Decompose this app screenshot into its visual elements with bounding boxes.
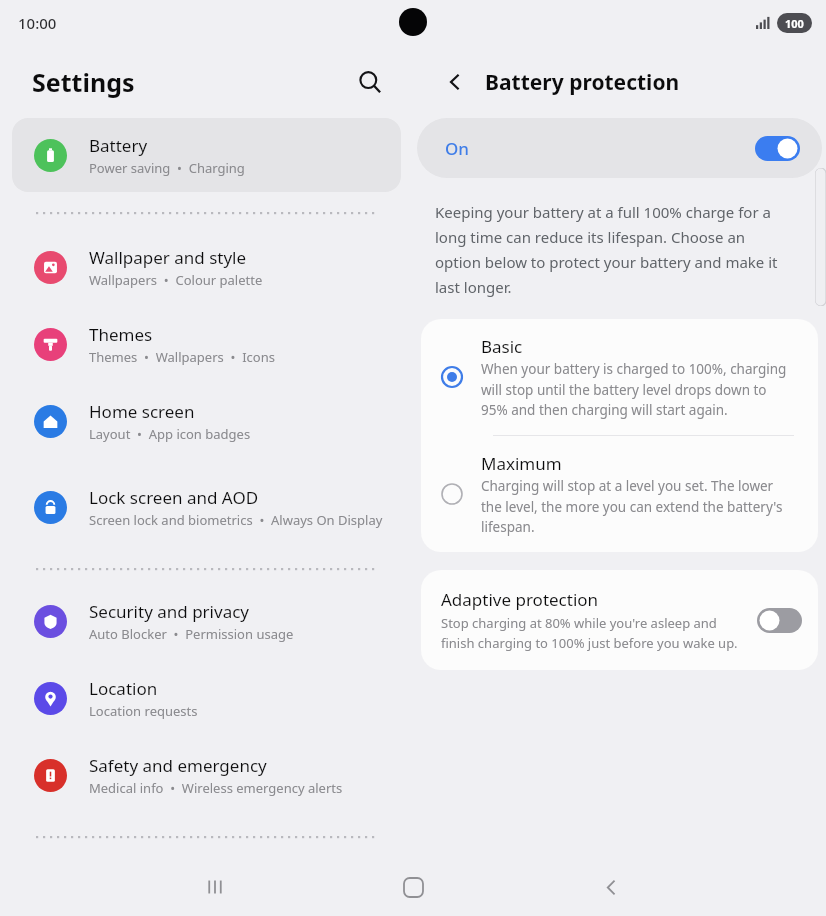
button[interactable]: Adaptive protection: [421, 570, 818, 670]
staticText: Keeping your battery at a full 100% char…: [435, 202, 786, 297]
button[interactable]: Home screen: [0, 383, 413, 460]
button[interactable]: Basic: [421, 319, 818, 435]
button[interactable]: Home: [384, 858, 442, 916]
staticText: Battery: [89, 134, 148, 157]
button[interactable]: Toggle off: [757, 608, 802, 633]
staticText: 10:00: [18, 13, 57, 33]
staticText: Themes: [89, 323, 153, 346]
button[interactable]: Security and privacy: [0, 583, 413, 660]
staticText: Settings: [32, 65, 349, 99]
staticText: Location requests: [89, 702, 198, 720]
button[interactable]: Back: [435, 62, 475, 102]
button[interactable]: Back: [582, 858, 640, 916]
staticText: Screen lock and biometrics • Always On D…: [89, 511, 383, 529]
staticText: Layout • App icon badges: [89, 425, 251, 443]
staticText: Stop charging at 80% while you're asleep…: [441, 614, 745, 652]
button[interactable]: Search: [349, 61, 391, 103]
staticText: Auto Blocker • Permission usage: [89, 625, 294, 643]
staticText: When your battery is charged to 100%, ch…: [481, 360, 794, 419]
staticText: Wallpaper and style: [89, 246, 247, 269]
button[interactable]: Recents: [186, 858, 244, 916]
staticText: Location: [89, 677, 158, 700]
button[interactable]: Battery: [12, 118, 401, 192]
staticText: Safety and emergency: [89, 754, 267, 777]
button[interactable]: Wallpaper and style: [0, 229, 413, 306]
staticText: Lock screen and AOD: [89, 486, 259, 509]
button[interactable]: Lock screen and AOD: [0, 460, 413, 554]
button[interactable]: Safety and emergency: [0, 737, 413, 814]
button[interactable]: Maximum: [421, 436, 818, 552]
button[interactable]: Toggle on: [755, 136, 800, 161]
staticText: Wallpapers • Colour palette: [89, 271, 263, 289]
staticText: Home screen: [89, 400, 195, 423]
staticText: Adaptive protection: [441, 588, 599, 611]
staticText: Charging will stop at a level you set. T…: [481, 477, 794, 536]
staticText: Maximum: [481, 452, 562, 475]
staticText: On: [445, 137, 755, 160]
staticText: Battery protection: [485, 68, 680, 97]
staticText: Themes • Wallpapers • Icons: [89, 348, 275, 366]
button[interactable]: Themes: [0, 306, 413, 383]
staticText: Power saving • Charging: [89, 159, 245, 177]
staticText: Basic: [481, 335, 523, 358]
button[interactable]: On: [417, 118, 822, 178]
staticText: Security and privacy: [89, 600, 250, 623]
staticText: 100: [785, 16, 804, 31]
staticText: Medical info • Wireless emergency alerts: [89, 779, 343, 797]
button[interactable]: Location: [0, 660, 413, 737]
